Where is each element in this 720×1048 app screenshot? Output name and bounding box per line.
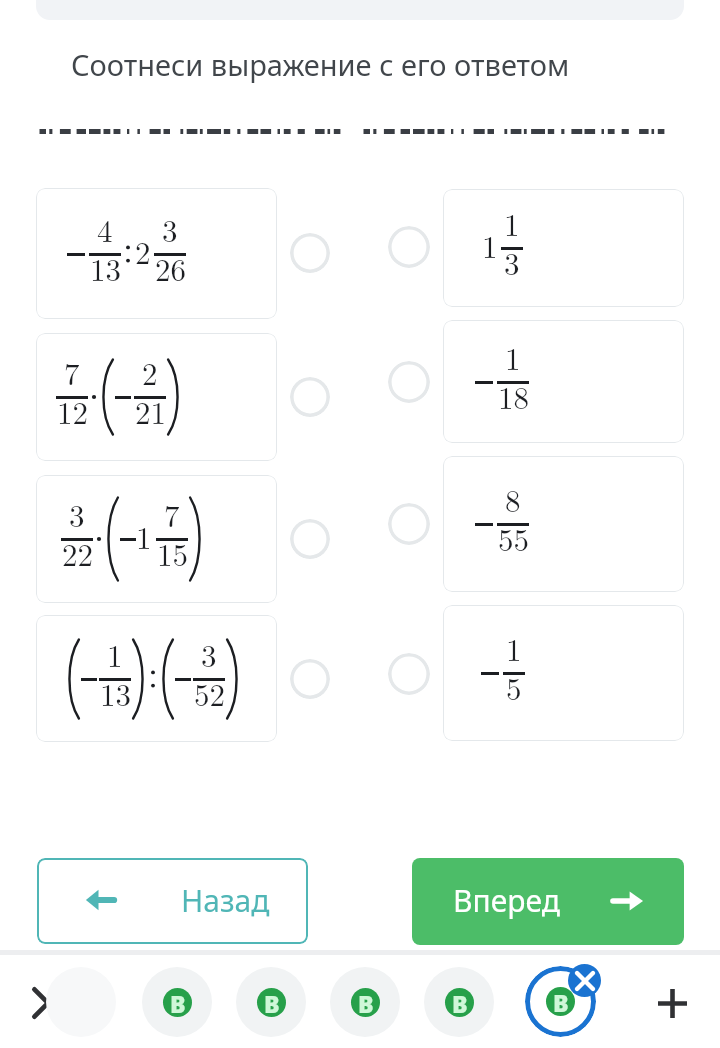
- button[interactable]: Close tab switcher: [20, 975, 76, 1031]
- staticText: 5: [506, 665, 522, 709]
- staticText: B: [170, 988, 186, 1017]
- staticText: 22: [62, 531, 93, 575]
- staticText: 3: [162, 207, 178, 251]
- staticText: 1: [504, 201, 520, 245]
- button[interactable]: 1: [36, 615, 277, 742]
- button[interactable]: Select expression 4: [290, 659, 330, 699]
- staticText: 7: [64, 350, 80, 394]
- staticText: 15: [157, 531, 188, 575]
- button[interactable]: Tab 2: [236, 967, 306, 1037]
- staticText: B: [553, 987, 569, 1016]
- staticText: 21: [135, 389, 166, 433]
- button[interactable]: 3: [36, 475, 277, 603]
- staticText: B: [358, 988, 374, 1017]
- staticText: 1: [107, 632, 123, 676]
- staticText: 1: [482, 223, 498, 267]
- button[interactable]: Select expression 1: [290, 233, 330, 273]
- button[interactable]: 1: [443, 189, 684, 307]
- staticText: 13: [100, 671, 131, 715]
- button[interactable]: Tab 4: [424, 967, 494, 1037]
- staticText: 7: [164, 492, 180, 536]
- staticText: 4: [97, 207, 113, 251]
- staticText: B: [452, 988, 468, 1017]
- button[interactable]: Select answer 3: [388, 503, 430, 545]
- button[interactable]: 1: [443, 320, 684, 443]
- button[interactable]: Вперед: [412, 858, 684, 945]
- button[interactable]: Select answer 1: [388, 226, 430, 268]
- button[interactable]: Tab 1: [142, 967, 212, 1037]
- staticText: 12: [57, 389, 88, 433]
- button[interactable]: Select expression 3: [290, 519, 330, 559]
- button[interactable]: 7: [36, 333, 277, 461]
- button[interactable]: Select answer 4: [388, 653, 430, 695]
- staticText: 1: [136, 514, 152, 558]
- staticText: Вперед: [453, 880, 560, 921]
- staticText: 26: [155, 246, 186, 290]
- staticText: 8: [505, 477, 521, 521]
- button[interactable]: 8: [443, 456, 684, 592]
- staticText: 3: [201, 632, 217, 676]
- staticText: Назад: [181, 880, 270, 921]
- button[interactable]: Current tab: [525, 966, 596, 1037]
- button[interactable]: Назад: [37, 858, 308, 944]
- button[interactable]: Select expression 2: [290, 377, 330, 417]
- staticText: 18: [498, 374, 529, 418]
- staticText: 52: [194, 671, 225, 715]
- button[interactable]: Tab 3: [330, 967, 400, 1037]
- staticText: 55: [498, 516, 529, 560]
- staticText: 1: [505, 335, 521, 379]
- staticText: 1: [506, 626, 522, 670]
- staticText: 3: [69, 492, 85, 536]
- button[interactable]: New tab: [644, 975, 700, 1031]
- staticText: 2: [135, 229, 151, 273]
- staticText: 3: [504, 240, 520, 284]
- staticText: B: [264, 988, 280, 1017]
- button[interactable]: Close current tab: [568, 964, 601, 997]
- staticText: 13: [90, 246, 121, 290]
- button[interactable]: Select answer 2: [388, 361, 430, 403]
- button[interactable]: 4: [36, 188, 277, 319]
- staticText: 2: [142, 350, 158, 394]
- staticText: Соотнеси выражение с его ответом: [71, 45, 570, 84]
- button[interactable]: 1: [443, 605, 684, 741]
